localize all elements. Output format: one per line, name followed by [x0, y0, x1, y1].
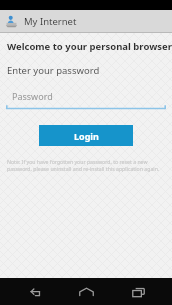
staticText: Welcome to your personal browser: [7, 40, 172, 53]
staticText: Note: If you have forgotten your passwor…: [7, 158, 162, 172]
staticText: Password: [12, 90, 53, 102]
staticText: My Internet: [24, 15, 77, 28]
other: App icon: [5, 15, 18, 28]
button[interactable]: Home: [69, 281, 103, 303]
button[interactable]: Login: [39, 125, 133, 146]
button[interactable]: Password: [6, 90, 166, 110]
staticText: Enter your password: [7, 64, 100, 77]
button[interactable]: Back: [18, 281, 52, 303]
staticText: Login: [74, 130, 99, 142]
button[interactable]: Recent apps: [121, 281, 155, 303]
button[interactable]: App icon: [0, 10, 172, 33]
